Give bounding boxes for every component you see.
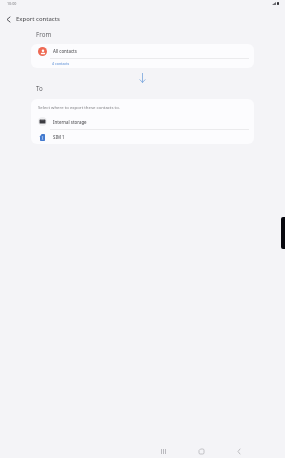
button[interactable]: Navigate up (0, 12, 16, 26)
staticText: To (36, 84, 43, 92)
button[interactable]: Edge panel handle (281, 217, 285, 249)
staticText: Select where to export these contacts to… (38, 104, 120, 110)
button[interactable]: All contacts (31, 44, 254, 58)
button[interactable]: SIM 1 (31, 130, 254, 144)
button[interactable]: Back (231, 445, 247, 458)
staticText: SIM 1 (53, 134, 65, 140)
staticText: 10:00 (7, 1, 17, 6)
staticText: 4 contacts (52, 61, 70, 66)
button[interactable]: Recent apps (155, 445, 171, 458)
staticText: Export contacts (16, 15, 60, 23)
staticText: From (36, 30, 52, 38)
button[interactable]: Home (193, 445, 209, 458)
staticText: All contacts (53, 48, 77, 54)
button[interactable]: Internal storage (31, 114, 254, 129)
staticText: Internal storage (53, 119, 87, 125)
